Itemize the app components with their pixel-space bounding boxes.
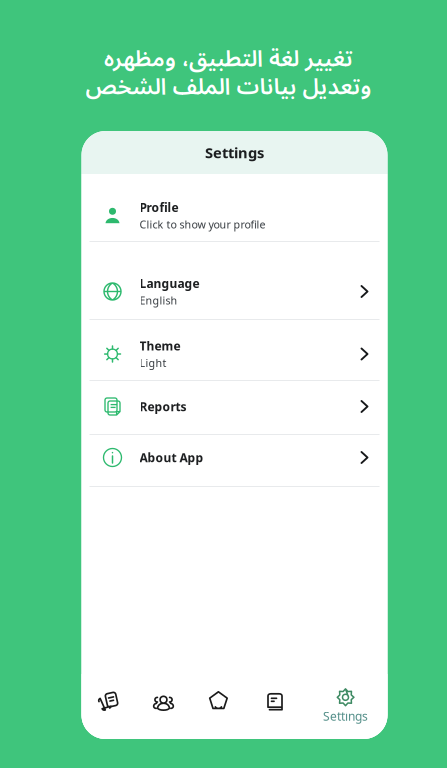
staticText: Click to show your profile <box>139 217 265 232</box>
button[interactable]: Groups <box>140 680 186 726</box>
button[interactable]: Theme <box>81 320 387 380</box>
button[interactable]: Feed <box>86 678 132 724</box>
button[interactable]: Settings <box>310 684 380 728</box>
button[interactable]: Reports <box>81 381 387 434</box>
staticText: Profile <box>139 199 178 215</box>
button[interactable]: Language <box>81 242 387 319</box>
button[interactable]: Library <box>252 679 298 725</box>
staticText: Settings <box>323 708 368 724</box>
staticText: Light <box>139 356 166 370</box>
staticText: Reports <box>139 398 186 414</box>
staticText: Language <box>139 275 199 291</box>
button[interactable]: About App <box>81 435 387 486</box>
staticText: Settings <box>205 143 264 162</box>
staticText: About App <box>139 449 203 465</box>
staticText: Theme <box>139 338 180 354</box>
button[interactable]: Profile <box>81 174 387 241</box>
button[interactable]: Home <box>195 678 241 724</box>
staticText: تغيير لغة التطبيق، ومظهره <box>103 35 352 83</box>
staticText: English <box>139 293 177 308</box>
staticText: وتعديل بيانات الملف الشخص <box>85 63 371 111</box>
